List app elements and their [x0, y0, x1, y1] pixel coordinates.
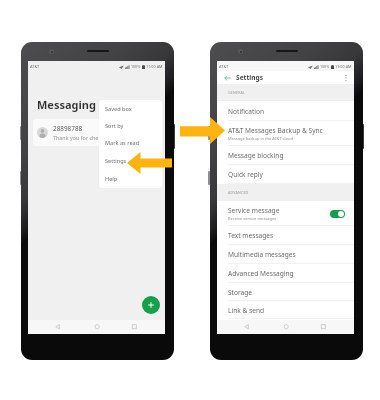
- staticText: Settings: [105, 157, 127, 165]
- staticText: 11:00 AM: [335, 64, 352, 69]
- button[interactable]: Mark as read: [99, 134, 162, 152]
- button[interactable]: Link & send: [217, 301, 354, 319]
- staticText: Thank you for che: [53, 134, 99, 141]
- staticText: Advanced Messaging: [228, 269, 294, 278]
- staticText: Sort by: [105, 122, 124, 130]
- staticText: Link & send: [228, 306, 265, 315]
- staticText: Receive service messages: [228, 216, 277, 221]
- button[interactable]: AT&T Messages Backup & Sync: [217, 121, 354, 146]
- button[interactable]: Notification: [217, 101, 354, 121]
- button[interactable]: More options: [341, 73, 351, 83]
- button[interactable]: 28898788: [33, 119, 161, 146]
- button[interactable]: Text messages: [217, 226, 354, 245]
- staticText: Service message: [228, 206, 280, 215]
- staticText: Message blocking: [228, 151, 284, 160]
- staticText: Help: [105, 175, 118, 183]
- button[interactable]: Back: [223, 73, 232, 82]
- staticText: AT&T: [30, 64, 40, 69]
- button[interactable]: Help: [99, 170, 162, 188]
- staticText: 100%: [320, 64, 330, 69]
- staticText: Notification: [228, 107, 265, 116]
- staticText: 28898788: [53, 124, 83, 133]
- button[interactable]: Settings: [99, 152, 162, 170]
- staticText: AT&T Messages Backup & Sync: [228, 126, 323, 135]
- button[interactable]: Sort by: [99, 117, 162, 134]
- staticText: AT&T: [219, 64, 229, 69]
- staticText: ADVANCED: [228, 190, 249, 195]
- staticText: Messaging: [37, 97, 96, 112]
- button[interactable]: Message blocking: [217, 146, 354, 165]
- button[interactable]: Quick reply: [217, 165, 354, 184]
- staticText: Text messages: [228, 231, 274, 240]
- button[interactable]: Storage: [217, 283, 354, 301]
- button[interactable]: Service message: [217, 201, 354, 226]
- staticText: Saved box: [105, 105, 132, 113]
- staticText: 11:00 AM: [146, 64, 163, 69]
- button[interactable]: Multimedia messages: [217, 245, 354, 264]
- staticText: 100%: [131, 64, 141, 69]
- staticText: Multimedia messages: [228, 250, 296, 259]
- staticText: Message backup in the AT&T cloud: [228, 136, 293, 141]
- staticText: Settings: [236, 73, 264, 82]
- button[interactable]: New message: [142, 296, 160, 314]
- staticText: Mark as read: [105, 139, 140, 147]
- staticText: Storage: [228, 288, 253, 297]
- staticText: Quick reply: [228, 170, 263, 179]
- button[interactable]: Saved box: [99, 100, 162, 117]
- button[interactable]: Service message toggle: [330, 210, 345, 218]
- button[interactable]: Advanced Messaging: [217, 264, 354, 283]
- staticText: GENERAL: [228, 90, 246, 95]
